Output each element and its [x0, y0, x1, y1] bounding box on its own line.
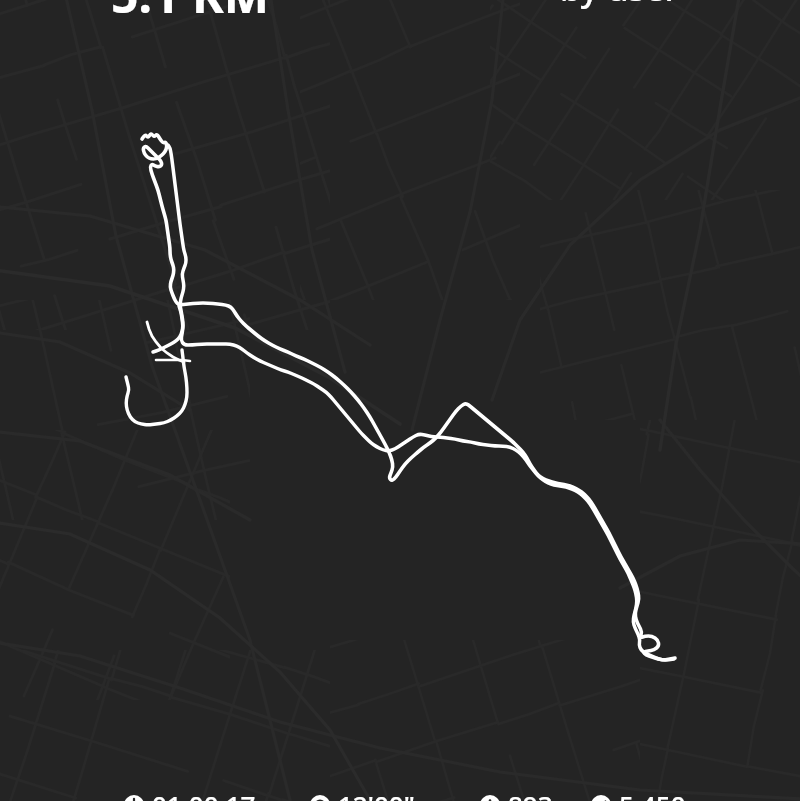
staticText: 5.450 — [619, 787, 686, 801]
staticText: 5.1 KM — [111, 0, 270, 27]
staticText: 893 — [508, 787, 553, 801]
staticText: 12'00" — [338, 787, 415, 801]
button[interactable]: 12'00" — [310, 787, 415, 801]
button[interactable]: 01:00:17 — [124, 787, 256, 801]
staticText: 01:00:17 — [152, 787, 256, 801]
button[interactable]: 893 — [480, 787, 553, 801]
staticText: by user — [560, 0, 679, 11]
button[interactable]: 5.450 — [591, 787, 686, 801]
